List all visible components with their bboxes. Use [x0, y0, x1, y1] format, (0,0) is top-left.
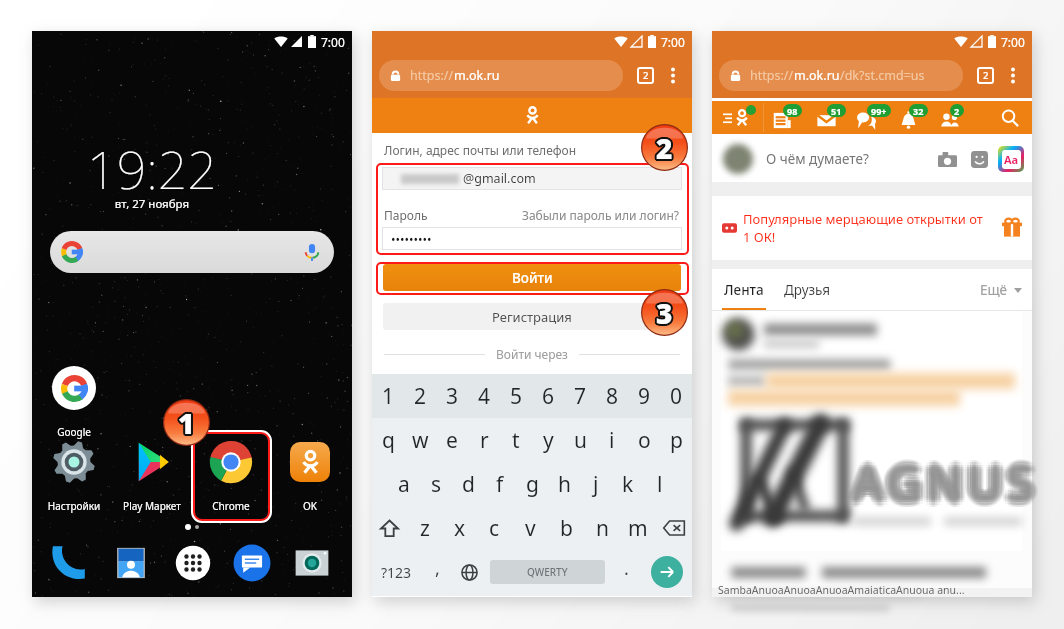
staticText: 1: [178, 405, 195, 443]
button[interactable]: 8: [596, 374, 628, 418]
button[interactable]: 0: [660, 374, 692, 418]
button[interactable]: More options: [1001, 63, 1025, 87]
button[interactable]: Notifications 98: [763, 101, 803, 134]
button[interactable]: y: [532, 418, 564, 462]
button[interactable]: Add photo: [934, 146, 960, 172]
button[interactable]: ,: [421, 550, 453, 594]
button[interactable]: g: [516, 462, 548, 506]
staticText: Популярные мерцающие открытки от 1 ОК!: [743, 210, 987, 246]
button[interactable]: e: [436, 418, 468, 462]
button[interactable]: [118, 440, 186, 498]
button[interactable]: Contacts: [110, 542, 152, 584]
button[interactable]: z: [407, 506, 442, 550]
staticText: 1: [180, 404, 197, 442]
button[interactable]: i: [596, 418, 628, 462]
button[interactable]: r: [468, 418, 500, 462]
staticText: 3: [657, 295, 674, 333]
button[interactable]: p: [660, 418, 692, 462]
button[interactable]: Camera: [291, 542, 333, 584]
button[interactable]: Change language: [453, 550, 485, 594]
button[interactable]: q: [372, 418, 404, 462]
button[interactable]: j: [580, 462, 612, 506]
button[interactable]: Популярные мерцающие открытки от 1 ОК!: [722, 196, 1022, 260]
button[interactable]: Notifications 2: [930, 101, 970, 134]
button[interactable]: 4: [468, 374, 500, 418]
button[interactable]: [276, 440, 344, 498]
button[interactable]: .: [610, 550, 642, 594]
staticText: c: [489, 514, 500, 543]
button[interactable]: https://: [719, 60, 963, 91]
button[interactable]: c: [477, 506, 512, 550]
button[interactable]: Tabs: [972, 62, 998, 88]
staticText: AGNUS: [860, 451, 1046, 514]
button[interactable]: u: [564, 418, 596, 462]
button[interactable]: Друзья: [782, 269, 832, 311]
button[interactable]: w: [404, 418, 436, 462]
staticText: 9: [638, 382, 651, 411]
staticText: AGNUS: [853, 446, 1039, 509]
button[interactable]: Tabs: [632, 62, 658, 88]
button[interactable]: h: [548, 462, 580, 506]
button[interactable]: All apps: [172, 542, 214, 584]
button[interactable]: Search: [988, 101, 1032, 134]
button[interactable]: s: [420, 462, 452, 506]
button[interactable]: Notifications 32: [889, 101, 929, 134]
button[interactable]: Забыли пароль или логин?: [522, 207, 680, 223]
button[interactable]: d: [452, 462, 484, 506]
button[interactable]: 3: [436, 374, 468, 418]
staticText: 1: [178, 404, 195, 442]
button[interactable]: Go: [651, 556, 683, 588]
button[interactable]: l: [644, 462, 676, 506]
button[interactable]: Menu: [712, 101, 760, 134]
button[interactable]: 6: [532, 374, 564, 418]
staticText: 2: [655, 131, 672, 169]
button[interactable]: Phone: [47, 542, 89, 584]
staticText: 3: [656, 294, 673, 332]
button[interactable]: a: [388, 462, 420, 506]
button[interactable]: [40, 440, 108, 498]
button[interactable]: Ещё: [980, 281, 1022, 299]
button[interactable]: x: [442, 506, 477, 550]
button[interactable]: 7: [564, 374, 596, 418]
button[interactable]: f: [484, 462, 516, 506]
button[interactable]: t: [500, 418, 532, 462]
staticText: AGNUS: [848, 449, 1034, 512]
button[interactable]: m: [620, 506, 656, 550]
button[interactable]: Войти: [383, 264, 681, 291]
button[interactable]: Add sticker: [966, 146, 992, 172]
staticText: @gmail.com: [463, 170, 536, 187]
button[interactable]: Shift: [372, 506, 407, 550]
button[interactable]: Notifications 99+: [847, 101, 887, 134]
button[interactable]: Backspace: [656, 506, 692, 550]
button[interactable]: https://: [379, 60, 623, 91]
button[interactable]: [197, 440, 265, 498]
button[interactable]: k: [612, 462, 644, 506]
button[interactable]: Notifications 51: [807, 101, 847, 134]
button[interactable]: n: [584, 506, 620, 550]
button[interactable]: 9: [628, 374, 660, 418]
button[interactable]: QWERTY: [490, 560, 605, 584]
button[interactable]: @gmail.com: [382, 167, 682, 190]
staticText: l: [657, 470, 663, 499]
button[interactable]: Messages: [231, 542, 273, 584]
staticText: 3: [657, 293, 674, 331]
button[interactable]: More options: [661, 63, 685, 87]
button[interactable]: 5: [500, 374, 532, 418]
staticText: 3: [658, 295, 675, 333]
button[interactable]: Text style: [998, 146, 1024, 172]
button[interactable]: o: [628, 418, 660, 462]
button[interactable]: Регистрация: [383, 303, 681, 330]
button[interactable]: [50, 231, 334, 273]
button[interactable]: v: [512, 506, 548, 550]
staticText: 2: [656, 131, 673, 169]
button[interactable]: b: [548, 506, 584, 550]
staticText: AGNUS: [851, 444, 1037, 507]
button[interactable]: ?123: [372, 550, 421, 594]
staticText: AGNUS: [851, 449, 1037, 512]
button[interactable]: Лента: [722, 269, 766, 311]
button[interactable]: 2: [404, 374, 436, 418]
button[interactable]: •••••••••: [382, 227, 682, 250]
staticText: 2: [643, 69, 649, 82]
button[interactable]: [40, 366, 108, 424]
button[interactable]: 1: [372, 374, 404, 418]
